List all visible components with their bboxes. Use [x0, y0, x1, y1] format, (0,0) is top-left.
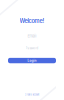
- staticText: Welcome!: [19, 17, 44, 24]
- staticText: Login: [27, 59, 36, 62]
- staticText: Email: [27, 34, 36, 38]
- staticText: Password: [25, 46, 38, 50]
- button[interactable]: Login: [8, 58, 56, 63]
- staticText: Create account: [24, 93, 39, 96]
- button[interactable]: Create account: [24, 93, 39, 96]
